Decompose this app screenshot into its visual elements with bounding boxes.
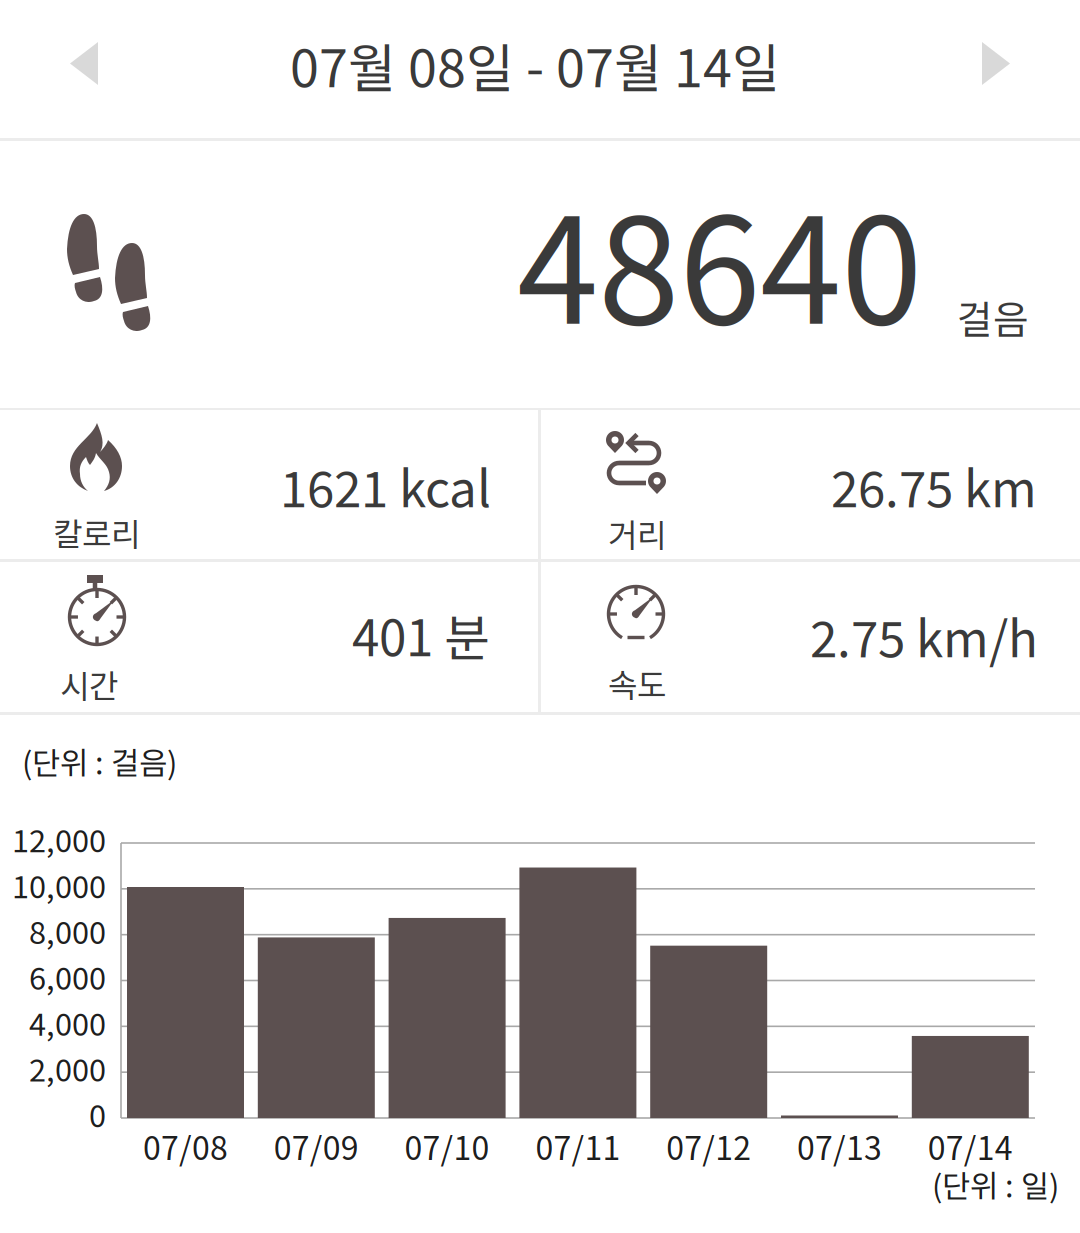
staticText: 6,000 (29, 954, 106, 999)
staticText: 0 (89, 1092, 106, 1136)
staticText: 2.75 km/h (810, 600, 1038, 671)
staticText: 48640 (517, 154, 922, 366)
staticText: 26.75 km (831, 450, 1037, 521)
button[interactable]: 속도 (541, 562, 1080, 712)
staticText: 401 분 (352, 599, 489, 670)
button[interactable]: 시간 (0, 562, 538, 712)
staticText: 속도 (608, 660, 666, 706)
staticText: 거리 (608, 510, 666, 556)
staticText: 07/13 (797, 1123, 882, 1169)
staticText: 07/09 (274, 1123, 359, 1169)
staticText: (단위 : 일) (932, 1162, 1059, 1206)
staticText: 12,000 (12, 817, 106, 861)
staticText: 4,000 (29, 1000, 106, 1044)
staticText: 07/08 (143, 1123, 228, 1169)
staticText: 07/10 (405, 1123, 490, 1169)
staticText: 걸음 (957, 289, 1029, 345)
staticText: 시간 (60, 661, 118, 707)
staticText: 1621 kcal (280, 450, 491, 521)
staticText: 07/12 (666, 1123, 751, 1169)
button[interactable]: 칼로리 (0, 410, 538, 559)
staticText: 10,000 (12, 863, 106, 907)
staticText: 칼로리 (53, 509, 140, 555)
button[interactable]: Previous week (40, 28, 150, 100)
button[interactable]: 거리 (541, 410, 1080, 559)
staticText: (단위 : 걸음) (22, 739, 177, 783)
staticText: 8,000 (29, 908, 106, 953)
staticText: 07/11 (535, 1123, 620, 1169)
button[interactable]: Next week (930, 28, 1040, 100)
staticText: 2,000 (29, 1046, 106, 1090)
staticText: 07/14 (928, 1123, 1013, 1169)
staticText: 07월 08일 - 07월 14일 (290, 27, 780, 102)
